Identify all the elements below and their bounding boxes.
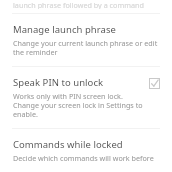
button[interactable]: Speak PIN to unlock toggle bbox=[147, 76, 162, 91]
button[interactable]: Speak PIN to unlock bbox=[0, 67, 172, 128]
staticText: Speak PIN to unlock bbox=[13, 76, 104, 89]
button[interactable]: Manage launch phrase bbox=[0, 14, 172, 66]
staticText: Works only with PIN screen lock. Change … bbox=[13, 91, 143, 119]
staticText: Change your current launch phrase or edi… bbox=[13, 38, 162, 57]
button[interactable]: Commands while locked bbox=[0, 129, 172, 172]
staticText: Commands while locked bbox=[13, 138, 123, 151]
staticText: Manage launch phrase bbox=[13, 23, 116, 36]
button[interactable]: launch phrase followed by a command bbox=[0, 0, 172, 9]
staticText: launch phrase followed by a command bbox=[13, 0, 144, 9]
staticText: Decide which commands will work before u… bbox=[13, 153, 162, 163]
